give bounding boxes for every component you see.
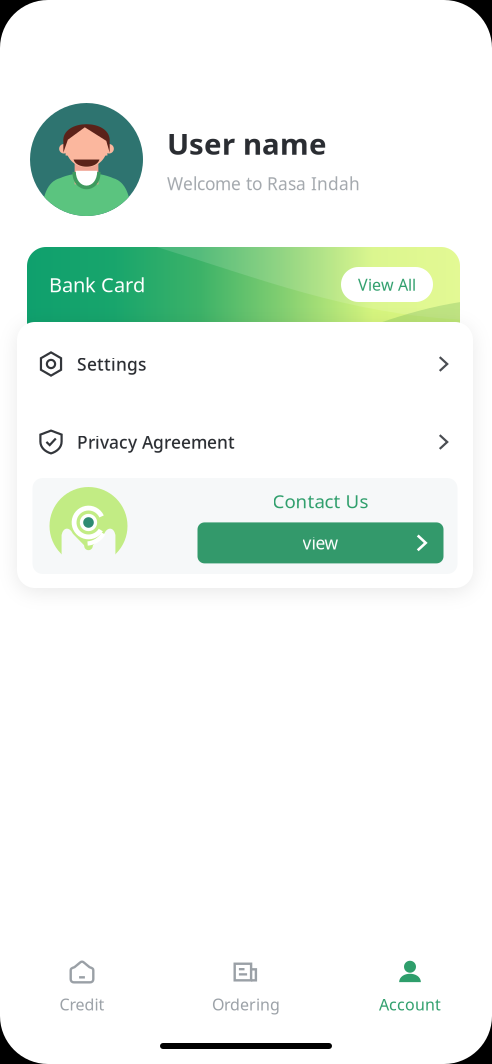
staticText: User name <box>167 124 327 163</box>
staticText: Welcome to Rasa Indah <box>167 172 360 195</box>
staticText: Ordering <box>212 994 280 1015</box>
button[interactable]: view <box>197 522 443 563</box>
button[interactable]: Account <box>328 959 492 1015</box>
button[interactable]: Credit <box>0 959 164 1015</box>
staticText: Credit <box>59 994 104 1015</box>
staticText: view <box>302 531 338 554</box>
staticText: Account <box>379 994 441 1015</box>
button[interactable]: View All <box>341 267 433 302</box>
staticText: Contact Us <box>272 489 368 513</box>
staticText: View All <box>358 274 416 295</box>
staticText: Bank Card <box>49 271 145 298</box>
staticText: Settings <box>77 352 146 375</box>
button[interactable]: Privacy Agreement <box>17 406 473 478</box>
staticText: Privacy Agreement <box>77 430 235 453</box>
button[interactable]: Settings <box>17 322 473 406</box>
button[interactable]: Ordering <box>164 959 328 1015</box>
